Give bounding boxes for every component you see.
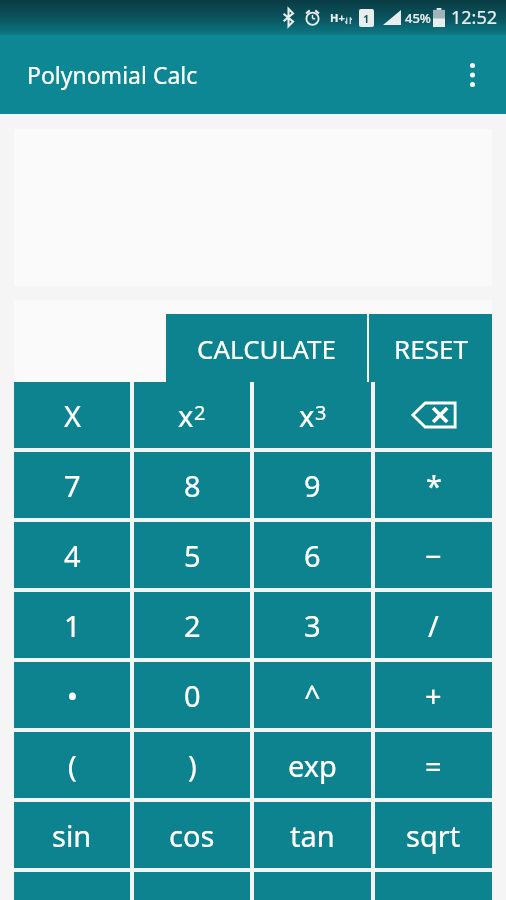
staticText: • (67, 676, 78, 715)
staticText: 3 (304, 606, 321, 645)
staticText: + (425, 676, 442, 715)
staticText: − (425, 536, 442, 575)
button[interactable]: RESET (369, 314, 492, 382)
button[interactable]: 2 (134, 592, 250, 658)
button[interactable]: ^ (254, 662, 371, 728)
staticText: ^ (304, 676, 321, 715)
staticText: 1 (64, 606, 81, 645)
staticText: 2 (184, 606, 201, 645)
staticText: cos (169, 816, 215, 855)
staticText: tan (290, 816, 335, 855)
button[interactable]: 4 (14, 522, 130, 588)
button[interactable]: 7 (14, 452, 130, 518)
staticText: 4 (64, 536, 81, 575)
button[interactable]: / (375, 592, 492, 658)
staticText: H+ (330, 10, 345, 25)
staticText: 5 (184, 536, 201, 575)
staticText: sin (52, 816, 92, 855)
staticText: = (425, 746, 442, 785)
staticText: 8 (184, 466, 201, 505)
staticText: 9 (304, 466, 321, 505)
button[interactable]: 0 (134, 662, 250, 728)
staticText: 2 (194, 399, 206, 426)
staticText: Polynomial Calc (27, 59, 198, 90)
staticText: 3 (315, 399, 327, 426)
staticText: RESET (394, 331, 468, 366)
staticText: ( (68, 746, 77, 785)
button[interactable]: sin (14, 802, 130, 868)
button[interactable]: 3 (254, 592, 371, 658)
staticText: CALCULATE (197, 331, 336, 366)
button[interactable]: tan (254, 802, 371, 868)
staticText: x (299, 396, 315, 435)
button[interactable]: ( (14, 732, 130, 798)
button[interactable]: X (14, 382, 130, 448)
staticText: * (426, 466, 442, 505)
button[interactable]: − (375, 522, 492, 588)
staticText: x (178, 396, 194, 435)
button[interactable]: • (14, 662, 130, 728)
staticText: 12:52 (451, 5, 498, 30)
staticText: 1 (363, 11, 370, 25)
button[interactable]: sqrt (375, 802, 492, 868)
button[interactable]: 9 (254, 452, 371, 518)
button[interactable]: ) (134, 732, 250, 798)
staticText: sqrt (406, 816, 461, 855)
button[interactable]: 1 (14, 592, 130, 658)
button[interactable]: x (134, 382, 250, 448)
button[interactable]: CALCULATE (166, 314, 367, 382)
staticText: / (428, 606, 439, 645)
button[interactable]: exp (254, 732, 371, 798)
staticText: ) (188, 746, 197, 785)
button[interactable]: cos (134, 802, 250, 868)
button[interactable]: 6 (254, 522, 371, 588)
button[interactable]: = (375, 732, 492, 798)
staticText: 7 (64, 466, 81, 505)
button[interactable]: More options (448, 51, 496, 99)
button[interactable]: * (375, 452, 492, 518)
staticText: 6 (304, 536, 321, 575)
staticText: X (64, 396, 81, 435)
button[interactable]: 8 (134, 452, 250, 518)
staticText: 45% (405, 9, 431, 27)
button[interactable]: x (254, 382, 371, 448)
staticText: exp (288, 746, 337, 785)
button[interactable]: + (375, 662, 492, 728)
staticText: 0 (184, 676, 201, 715)
button[interactable]: 5 (134, 522, 250, 588)
button[interactable]: Backspace (375, 382, 492, 448)
